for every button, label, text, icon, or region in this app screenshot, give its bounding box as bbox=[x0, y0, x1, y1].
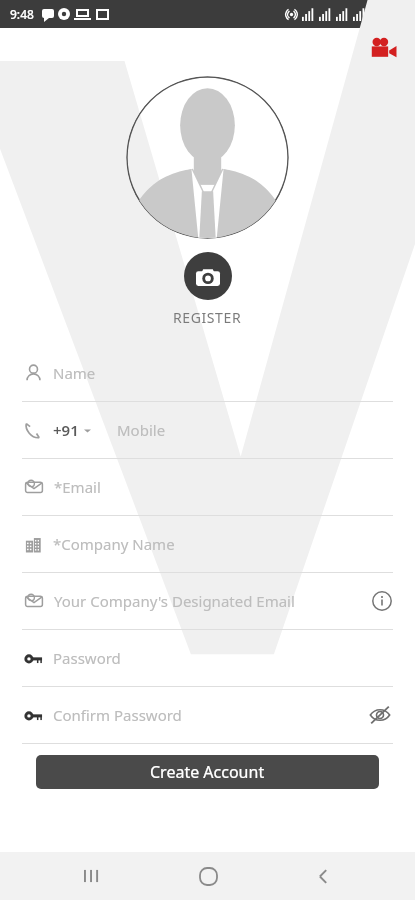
staticText: REGISTER bbox=[173, 308, 242, 327]
button[interactable]: Home bbox=[184, 852, 232, 900]
button[interactable]: Name bbox=[0, 345, 415, 402]
button[interactable]: +91 bbox=[0, 402, 415, 459]
button[interactable]: Your Company's Designated Email bbox=[0, 573, 415, 630]
button[interactable]: Information bbox=[371, 590, 393, 612]
staticText: +91 bbox=[53, 420, 79, 440]
button[interactable]: Show password bbox=[367, 702, 393, 728]
button[interactable]: Create Account bbox=[36, 755, 379, 789]
staticText: *Company Name bbox=[53, 534, 393, 554]
button[interactable]: *Email bbox=[0, 459, 415, 516]
button[interactable]: Video tutorial bbox=[367, 31, 401, 65]
button[interactable]: Back bbox=[299, 852, 347, 900]
staticText: Your Company's Designated Email bbox=[54, 591, 371, 611]
staticText: Confirm Password bbox=[53, 705, 367, 725]
staticText: Name bbox=[53, 363, 393, 383]
staticText: 9:48 bbox=[10, 6, 34, 22]
button[interactable]: Recents bbox=[68, 852, 116, 900]
button[interactable]: Confirm Password bbox=[0, 687, 415, 744]
staticText: *Email bbox=[54, 477, 393, 497]
button[interactable]: *Company Name bbox=[0, 516, 415, 573]
button[interactable]: Profile photo bbox=[126, 76, 289, 239]
staticText: Password bbox=[53, 648, 393, 668]
staticText: Mobile bbox=[117, 420, 393, 440]
staticText: Create Account bbox=[150, 761, 265, 783]
button[interactable]: Password bbox=[0, 630, 415, 687]
button[interactable]: Take photo bbox=[184, 252, 232, 300]
